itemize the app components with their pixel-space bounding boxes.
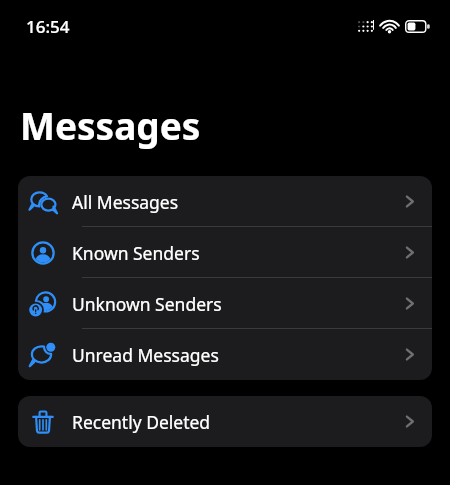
- staticText: All Messages: [72, 190, 419, 214]
- button[interactable]: Known Senders: [18, 227, 432, 278]
- button[interactable]: Unknown Senders: [18, 278, 432, 329]
- staticText: Recently Deleted: [72, 410, 419, 434]
- staticText: Messages: [20, 100, 201, 150]
- staticText: Unknown Senders: [72, 292, 419, 316]
- staticText: Unread Messages: [72, 343, 419, 367]
- button[interactable]: Unread Messages: [18, 329, 432, 380]
- button[interactable]: All Messages: [18, 176, 432, 227]
- staticText: Known Senders: [72, 241, 419, 265]
- staticText: 16:54: [26, 15, 70, 38]
- button[interactable]: Recently Deleted: [18, 396, 432, 447]
